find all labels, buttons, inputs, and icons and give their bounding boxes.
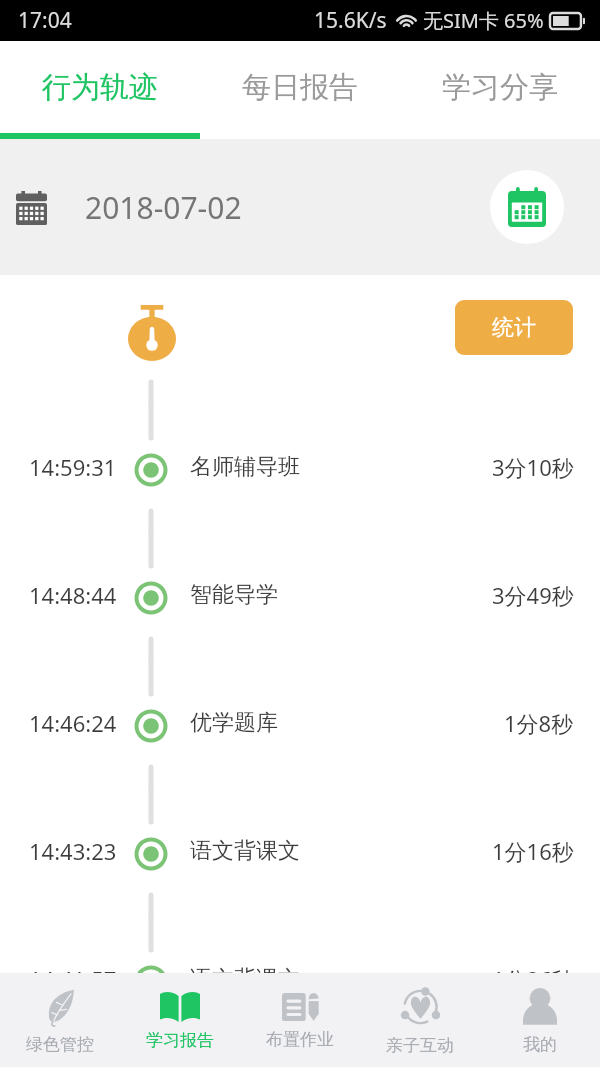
staticText: 14:48:44 — [29, 580, 117, 610]
staticText: 14:46:24 — [29, 708, 117, 738]
button[interactable]: 布置作业 — [240, 973, 360, 1067]
staticText: 14:41:57 — [29, 964, 117, 994]
button[interactable]: 14:41:57 — [0, 918, 600, 1046]
staticText: 1分8秒 — [504, 708, 574, 738]
staticText: 14:59:31 — [29, 452, 117, 482]
button[interactable]: 统计 — [455, 300, 573, 355]
button[interactable]: 绿色管控 — [0, 973, 120, 1067]
staticText: 1分26秒 — [492, 964, 574, 994]
staticText: 3分49秒 — [492, 580, 574, 610]
button[interactable]: 14:48:44 — [0, 534, 600, 662]
button[interactable]: 14:46:24 — [0, 662, 600, 790]
staticText: 学习分享 — [442, 69, 558, 106]
button[interactable]: 14:59:31 — [0, 406, 600, 534]
staticText: 我的 — [523, 1034, 557, 1055]
button[interactable]: 我的 — [480, 973, 600, 1067]
staticText: 绿色管控 — [26, 1034, 94, 1055]
staticText: 每日报告 — [242, 69, 358, 106]
staticText: 3分10秒 — [492, 452, 574, 482]
staticText: 无SIM卡 65% — [423, 7, 544, 34]
staticText: 2018-07-02 — [85, 187, 242, 228]
button[interactable]: 14:43:23 — [0, 790, 600, 918]
staticText: 亲子互动 — [386, 1035, 454, 1056]
staticText: 17:04 — [18, 6, 72, 35]
staticText: 优学题库 — [190, 709, 278, 737]
staticText: 语文背课文 — [190, 965, 300, 993]
staticText: 统计 — [492, 314, 536, 342]
staticText: 智能导学 — [190, 581, 278, 609]
button[interactable]: 亲子互动 — [360, 973, 480, 1067]
staticText: 布置作业 — [266, 1029, 334, 1050]
staticText: 14:43:23 — [29, 836, 117, 866]
button[interactable]: 每日报告 — [200, 41, 400, 133]
staticText: 学习报告 — [146, 1030, 214, 1051]
staticText: 行为轨迹 — [42, 69, 158, 106]
staticText: 1分16秒 — [492, 836, 574, 866]
button[interactable]: 行为轨迹 — [0, 41, 200, 133]
staticText: 15.6K/s — [314, 6, 387, 35]
button[interactable]: 学习报告 — [120, 973, 240, 1067]
staticText: 名师辅导班 — [190, 453, 300, 481]
button[interactable]: 学习分享 — [400, 41, 600, 133]
staticText: 语文背课文 — [190, 837, 300, 865]
button[interactable]: Pick date — [490, 170, 564, 244]
